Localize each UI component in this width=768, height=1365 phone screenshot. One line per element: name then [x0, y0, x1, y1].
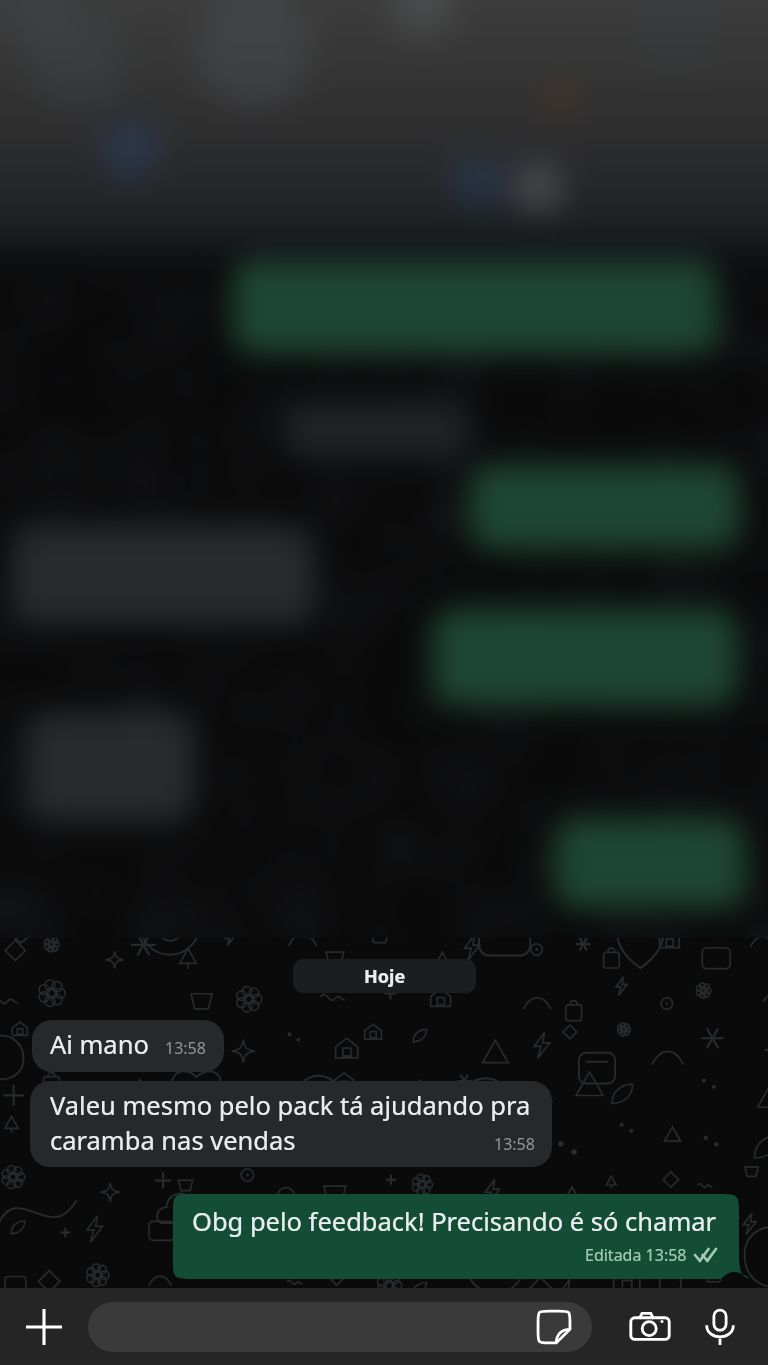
button[interactable]: Camera [608, 1288, 692, 1365]
staticText: Obg pelo feedback! Precisando é só chama… [192, 1204, 717, 1239]
button[interactable]: Valeu mesmo pelo pack tá ajudando pra [30, 1081, 552, 1167]
button[interactable]: Sticker [88, 1302, 592, 1352]
button[interactable]: Attach [0, 1288, 88, 1365]
staticText: Hoje [364, 964, 406, 989]
staticText: 13:58 [165, 1037, 206, 1059]
button[interactable]: Voice message [684, 1288, 756, 1365]
staticText: Editada 13:58 [585, 1244, 687, 1266]
button[interactable]: Ai mano [32, 1020, 224, 1072]
staticText: Ai mano [50, 1027, 149, 1062]
staticText: Valeu mesmo pelo pack tá ajudando pra [50, 1088, 531, 1123]
button[interactable]: Hoje [293, 959, 476, 993]
staticText: 13:58 [494, 1133, 535, 1155]
button[interactable]: Sticker [535, 1308, 573, 1346]
staticText: caramba nas vendas [50, 1123, 296, 1158]
button[interactable]: Obg pelo feedback! Precisando é só chama… [173, 1194, 750, 1279]
